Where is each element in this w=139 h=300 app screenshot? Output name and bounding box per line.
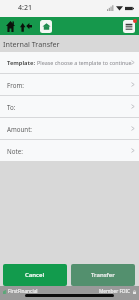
- staticText: Member FDIC: [99, 288, 131, 295]
- button[interactable]: Cancel: [3, 264, 67, 286]
- staticText: Amount:: [7, 125, 33, 133]
- button[interactable]: From:: [0, 74, 139, 95]
- staticText: Please choose a template to continue: [37, 59, 135, 66]
- staticText: Note:: [7, 147, 23, 155]
- staticText: Cancel: [25, 271, 45, 279]
- staticText: FirstFinancial: [8, 288, 38, 295]
- button[interactable]: Payments: [38, 17, 53, 35]
- button[interactable]: Home: [3, 17, 18, 35]
- staticText: Transfer: [91, 271, 115, 279]
- button[interactable]: Transfers: [18, 17, 34, 35]
- staticText: 4:21: [18, 3, 32, 13]
- staticText: Template:: [7, 59, 35, 67]
- staticText: From:: [7, 81, 24, 89]
- button[interactable]: Template:: [0, 52, 139, 73]
- staticText: To:: [7, 103, 16, 111]
- staticText: Internal Transfer: [3, 39, 60, 49]
- button[interactable]: Amount:: [0, 118, 139, 139]
- button[interactable]: To:: [0, 96, 139, 117]
- button[interactable]: Notifications: [121, 18, 137, 34]
- button[interactable]: Transfer: [71, 264, 135, 286]
- button[interactable]: Note:: [0, 140, 139, 161]
